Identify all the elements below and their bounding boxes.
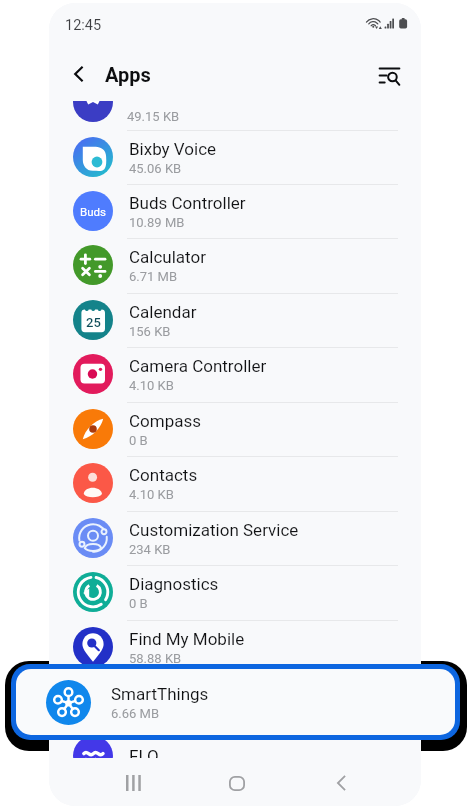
button[interactable]: FLO [49,729,421,783]
staticText: Buds Controller [129,193,246,213]
staticText: FLO [129,746,159,766]
staticText: Calculator [129,247,206,267]
staticText: 6.66 MB [111,706,160,721]
staticText: 6.66 MB [129,705,178,720]
button[interactable]: Search [372,57,406,91]
button[interactable]: Bixby Voice [49,130,421,184]
button[interactable]: Camera Controller [49,347,421,401]
staticText: Diagnostics [129,574,219,594]
staticText: 4.10 KB [129,487,174,502]
staticText: 0 B [129,596,148,611]
staticText: Camera Controller [129,356,267,376]
staticText: 156 KB [129,324,171,339]
staticText: 234 KB [129,542,171,557]
button[interactable]: Navigate up [63,58,95,90]
button[interactable]: Compass [49,402,421,456]
button[interactable]: Recent apps [117,767,149,799]
button[interactable]: Contacts [49,456,421,510]
button[interactable]: SmartThings [16,669,455,735]
staticText: 0 B [129,433,148,448]
staticText: SmartThings [129,683,227,703]
staticText: SmartThings [111,684,209,704]
staticText: 58.88 KB [129,651,182,666]
staticText: Calendar [129,302,197,322]
button[interactable]: Diagnostics [49,565,421,619]
staticText: Contacts [129,465,198,485]
staticText: Compass [129,411,202,431]
staticText: 10.89 MB [129,215,185,230]
staticText: Buds [80,205,106,218]
button[interactable]: Buds [49,184,421,238]
button[interactable]: Find My Mobile [49,620,421,674]
staticText: 45.06 KB [129,161,182,176]
button[interactable]: Customization Service [49,511,421,565]
staticText: 4.10 KB [129,378,174,393]
staticText: 25 [86,315,101,330]
button[interactable]: Home [221,767,253,799]
staticText: Apps [105,63,151,86]
staticText: 12:45 [65,17,102,34]
button[interactable]: 25 [49,293,421,347]
staticText: Find My Mobile [129,629,245,649]
button[interactable]: SmartThings [49,674,421,728]
staticText: Bixby Voice [129,139,217,159]
staticText: 49.15 KB [127,109,180,124]
staticText: Customization Service [129,520,299,540]
button[interactable]: Calculator [49,238,421,292]
button[interactable]: Back [325,767,357,799]
staticText: 6.71 MB [129,269,178,284]
